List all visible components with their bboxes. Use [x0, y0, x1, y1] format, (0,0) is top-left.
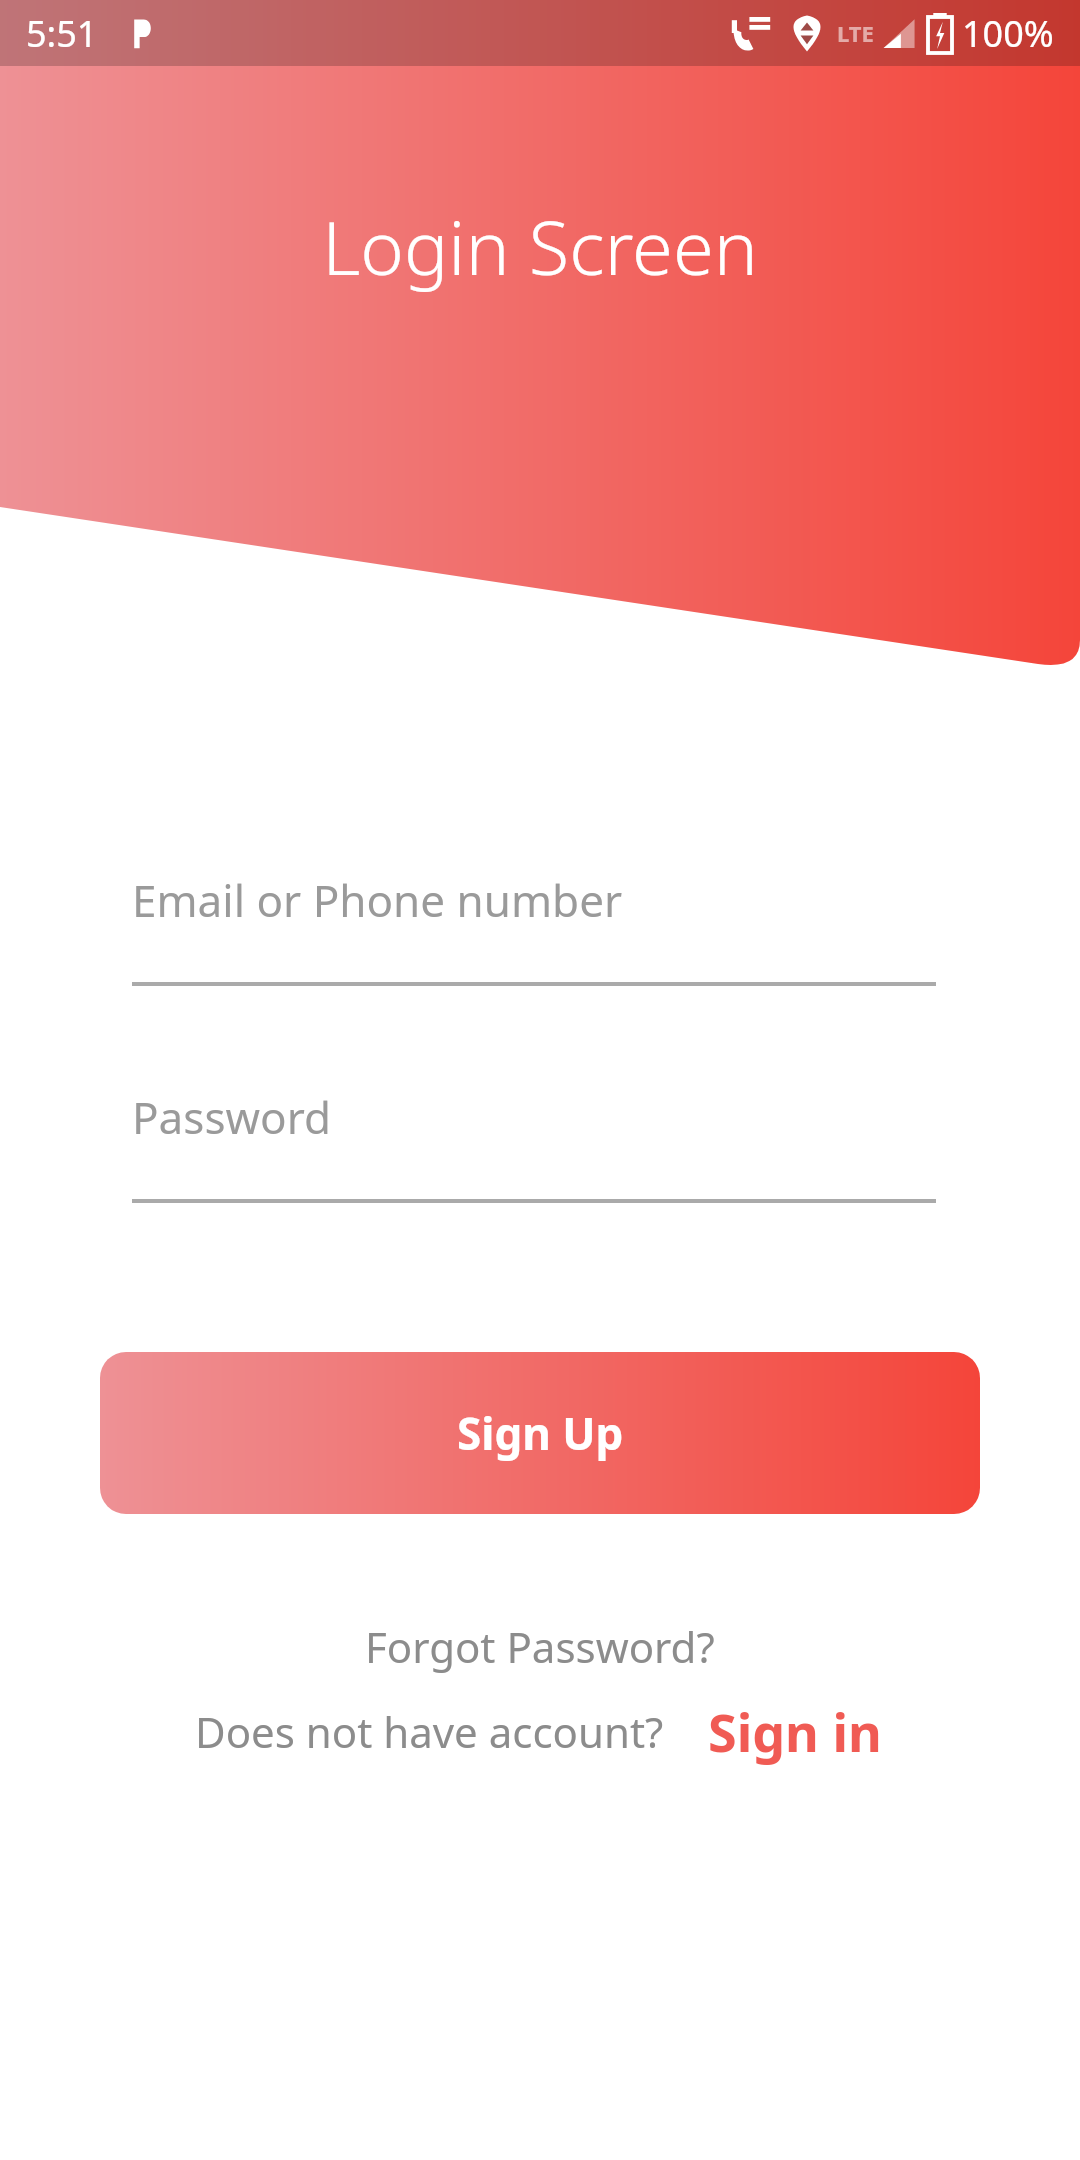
button[interactable]: Sign Up — [100, 1352, 980, 1514]
button[interactable]: Sign in — [704, 1692, 886, 1771]
button[interactable]: Email or Phone number — [132, 856, 936, 986]
staticText: Email or Phone number — [132, 870, 623, 930]
staticText: 5:51 — [26, 9, 98, 58]
staticText: Login Screen — [322, 196, 758, 297]
staticText: LTE — [837, 18, 874, 48]
staticText: Sign in — [708, 1696, 882, 1767]
button[interactable]: Password — [132, 1073, 936, 1203]
staticText: Sign Up — [457, 1403, 624, 1463]
staticText: Password — [132, 1087, 332, 1147]
staticText: Does not have account? — [195, 1703, 664, 1760]
staticText: Forgot Password? — [365, 1618, 715, 1675]
button[interactable]: Forgot Password? — [351, 1610, 729, 1683]
staticText: 100% — [962, 9, 1054, 58]
